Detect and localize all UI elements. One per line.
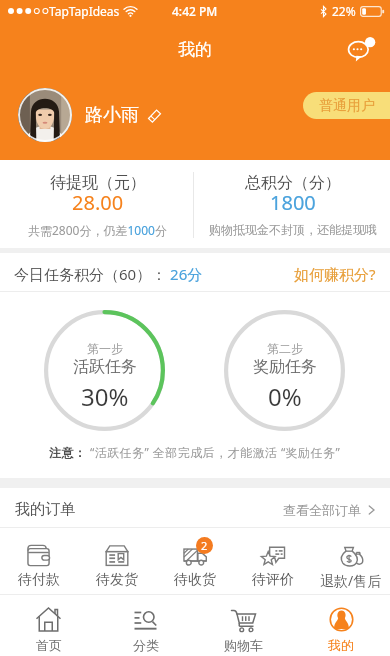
button[interactable]: 待提现（元） (0, 160, 195, 187)
staticText: 总积分（分） (245, 173, 341, 193)
button[interactable]: 总积分（分） (195, 160, 390, 187)
button[interactable] (18, 88, 72, 142)
button[interactable]: 查看全部订单 (283, 502, 375, 518)
button[interactable]: 退款/售后 (312, 528, 390, 551)
staticText: 购物车 (224, 637, 263, 653)
staticText: 如何赚积分? (294, 264, 376, 284)
staticText: 共需2800分，仍差1000分 (28, 222, 167, 238)
staticText: 路小雨 (85, 104, 139, 127)
staticText: 活跃任务 (73, 357, 137, 377)
button[interactable]: 普通用户 (303, 92, 390, 119)
staticText: 1800 (270, 189, 316, 216)
button[interactable]: 如何赚积分? (294, 264, 376, 284)
staticText: 4:42 PM (172, 3, 218, 19)
button[interactable]: 第二步 (224, 310, 345, 431)
button[interactable]: Messages (348, 35, 376, 63)
button[interactable]: 待付款 (0, 528, 78, 551)
staticText: 今日任务积分（60）： 26分 (14, 264, 203, 284)
staticText: 我的 (328, 637, 354, 653)
button[interactable]: 2 (156, 528, 234, 551)
button[interactable]: 第一步 (44, 310, 165, 431)
button[interactable]: 待发货 (78, 528, 156, 551)
staticText: 0% (268, 380, 302, 413)
button[interactable]: 分类 (97, 595, 194, 622)
button[interactable]: 待评价 (234, 528, 312, 551)
button[interactable]: 首页 (0, 595, 97, 622)
staticText: 注意： “活跃任务” 全部完成后，才能激活 “奖励任务” (49, 444, 341, 460)
staticText: 我的订单 (15, 500, 75, 519)
staticText: 30% (81, 380, 129, 413)
staticText: 第一步 (87, 341, 123, 356)
button[interactable]: 购物车 (194, 595, 292, 622)
staticText: 待付款 (18, 571, 60, 589)
staticText: TapTapIdeas (49, 3, 120, 19)
staticText: 待收货 (174, 571, 216, 589)
staticText: 我的 (178, 39, 212, 60)
staticText: 查看全部订单 (283, 502, 361, 518)
staticText: 普通用户 (319, 97, 375, 115)
button[interactable]: Edit name (147, 108, 162, 123)
staticText: 奖励任务 (253, 357, 317, 377)
staticText: 退款/售后 (320, 571, 382, 590)
staticText: 待发货 (96, 571, 138, 589)
button[interactable]: 我的 (292, 595, 390, 622)
staticText: 分类 (133, 637, 159, 653)
staticText: 首页 (36, 637, 62, 653)
staticText: 22% (332, 3, 356, 19)
staticText: 待提现（元） (50, 173, 146, 193)
staticText: 第二步 (267, 341, 303, 356)
staticText: 购物抵现金不封顶，还能提现哦 (209, 222, 377, 237)
staticText: 28.00 (72, 189, 124, 216)
staticText: 2 (201, 538, 208, 553)
staticText: 待评价 (252, 571, 294, 589)
